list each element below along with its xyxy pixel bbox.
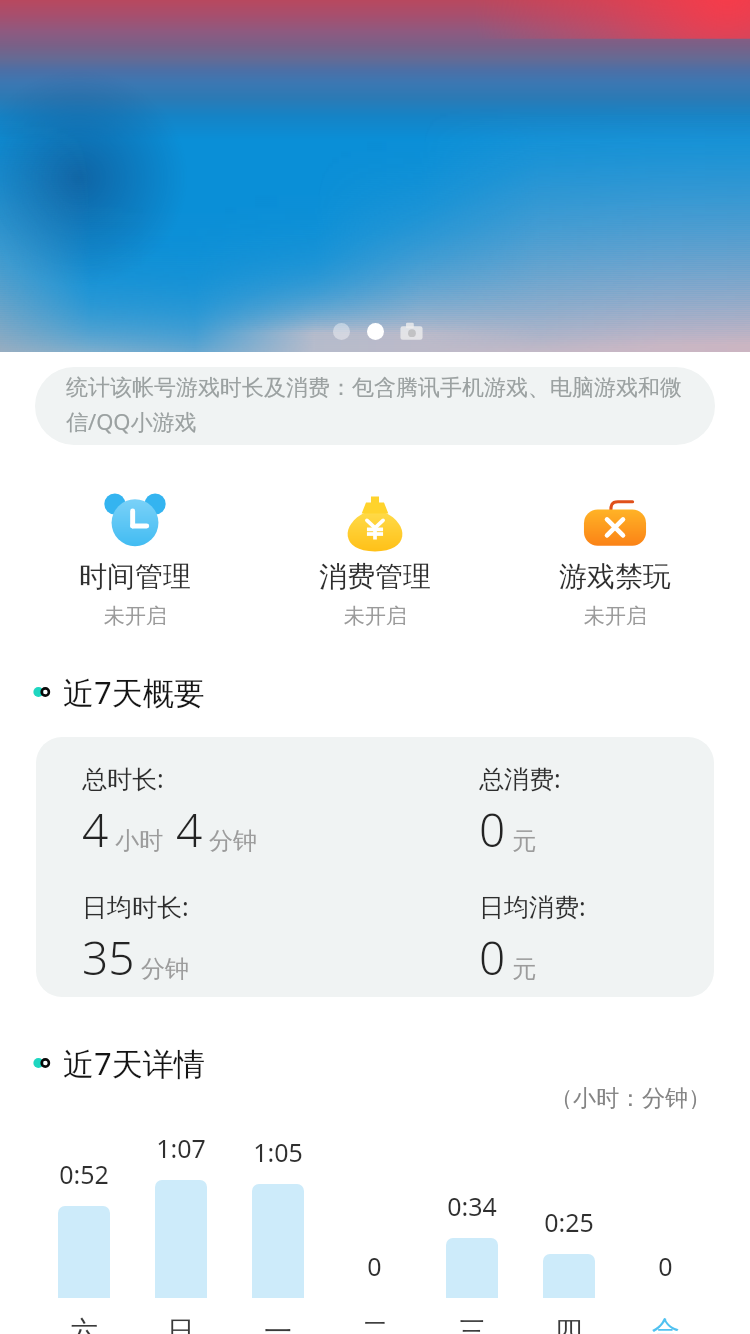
staticText: 日均消费: — [479, 889, 586, 923]
button[interactable]: Page 2 — [367, 323, 384, 340]
staticText: 未开启 — [104, 603, 167, 629]
staticText: 4 — [176, 798, 203, 861]
staticText: 二 — [361, 1314, 389, 1334]
staticText: 元 — [512, 826, 536, 856]
button[interactable]: 0 — [326, 1131, 423, 1334]
staticText: 四 — [555, 1314, 583, 1334]
staticText: 未开启 — [584, 603, 647, 629]
staticText: 1:07 — [156, 1131, 206, 1165]
staticText: 0 — [658, 1249, 673, 1283]
button[interactable]: 1:07 — [132, 1131, 229, 1334]
staticText: 小时 — [115, 826, 163, 856]
staticText: 0:34 — [447, 1189, 497, 1223]
staticText: 1:05 — [253, 1135, 303, 1169]
button[interactable]: Page 1 — [333, 323, 350, 340]
staticText: 日 — [167, 1314, 195, 1334]
staticText: 合 — [652, 1314, 680, 1334]
staticText: 0 — [479, 798, 506, 861]
button[interactable]: 总时长: — [36, 737, 714, 997]
staticText: （小时：分钟） — [550, 1084, 711, 1109]
staticText: 0:25 — [544, 1205, 594, 1239]
staticText: 六 — [70, 1314, 98, 1334]
staticText: 35 — [82, 926, 135, 989]
button[interactable]: Block games — [495, 494, 735, 629]
button[interactable]: Camera — [400, 320, 423, 342]
button[interactable]: 统计该帐号游戏时长及消费：包含腾讯手机游戏、电脑游戏和微信/QQ小游戏 — [35, 367, 715, 445]
staticText: 统计该帐号游戏时长及消费：包含腾讯手机游戏、电脑游戏和微信/QQ小游戏 — [66, 374, 697, 436]
staticText: 一 — [264, 1314, 292, 1334]
button[interactable]: 0:34 — [423, 1131, 520, 1334]
staticText: 三 — [458, 1314, 486, 1334]
staticText: 未开启 — [344, 603, 407, 629]
staticText: 总时长: — [82, 761, 164, 795]
staticText: 日均时长: — [82, 889, 189, 923]
staticText: 近7天概要 — [63, 671, 205, 713]
staticText: 0 — [367, 1249, 382, 1283]
staticText: 总消费: — [479, 761, 561, 795]
staticText: 元 — [512, 954, 536, 984]
staticText: 分钟 — [141, 954, 189, 984]
button[interactable]: 0:25 — [520, 1131, 617, 1334]
staticText: 4 — [82, 798, 109, 861]
staticText: 近7天详情 — [63, 1042, 205, 1084]
staticText: 时间管理 — [79, 559, 191, 594]
staticText: 0 — [479, 926, 506, 989]
button[interactable]: Spending management — [255, 494, 495, 629]
staticText: 消费管理 — [319, 559, 431, 594]
button[interactable]: 0:52 — [36, 1131, 132, 1334]
button[interactable]: 1:05 — [229, 1131, 326, 1334]
staticText: 0:52 — [59, 1157, 109, 1191]
button[interactable]: Time management — [15, 494, 255, 629]
staticText: 分钟 — [209, 826, 257, 856]
staticText: 游戏禁玩 — [559, 559, 671, 594]
button[interactable]: 0 — [617, 1131, 714, 1334]
